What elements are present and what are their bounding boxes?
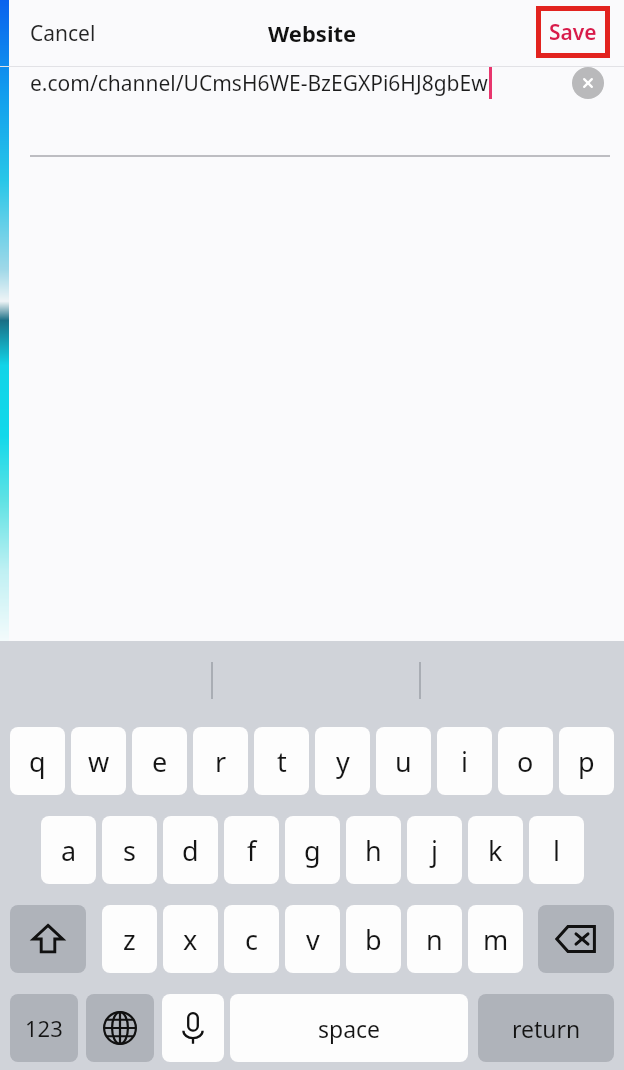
button[interactable]: r — [193, 727, 248, 795]
button[interactable]: d — [163, 816, 218, 884]
button[interactable]: g — [285, 816, 340, 884]
button[interactable]: i — [437, 727, 492, 795]
button[interactable]: e — [132, 727, 187, 795]
staticText: k — [488, 832, 503, 869]
staticText: d — [182, 832, 199, 869]
staticText: e — [152, 743, 168, 780]
button[interactable]: j — [407, 816, 462, 884]
staticText: f — [247, 832, 257, 869]
staticText: i — [461, 743, 468, 780]
staticText: w — [88, 743, 110, 780]
button[interactable]: Shift — [10, 905, 86, 973]
button[interactable]: o — [498, 727, 553, 795]
staticText: m — [483, 921, 509, 958]
staticText: Website — [268, 18, 357, 48]
button[interactable]: z — [102, 905, 157, 973]
button[interactable]: b — [346, 905, 401, 973]
button[interactable]: f — [224, 816, 279, 884]
button[interactable]: u — [376, 727, 431, 795]
staticText: b — [365, 921, 382, 958]
button[interactable]: h — [346, 816, 401, 884]
staticText: v — [306, 921, 320, 958]
staticText: space — [318, 1013, 381, 1044]
button[interactable]: x — [163, 905, 218, 973]
staticText: n — [426, 921, 443, 958]
staticText: h — [365, 832, 382, 869]
button[interactable]: w — [71, 727, 126, 795]
staticText: c — [245, 921, 258, 958]
staticText: z — [123, 921, 136, 958]
button[interactable]: t — [254, 727, 309, 795]
staticText: return — [512, 1013, 581, 1044]
staticText: Cancel — [30, 19, 96, 48]
staticText: u — [395, 743, 412, 780]
button[interactable]: a — [41, 816, 96, 884]
button[interactable]: v — [285, 905, 340, 973]
staticText: j — [431, 832, 438, 869]
staticText: x — [183, 921, 198, 958]
button[interactable]: p — [559, 727, 614, 795]
button[interactable]: Switch keyboard language — [86, 994, 154, 1062]
staticText: Save — [549, 18, 597, 47]
button[interactable]: Backspace — [538, 905, 614, 973]
button[interactable]: c — [224, 905, 279, 973]
button[interactable]: n — [407, 905, 462, 973]
button[interactable]: s — [102, 816, 157, 884]
button[interactable]: m — [468, 905, 523, 973]
button[interactable]: Save — [536, 6, 610, 58]
staticText: q — [29, 743, 46, 780]
button[interactable]: space — [230, 994, 468, 1062]
button[interactable]: Voice input — [162, 994, 224, 1062]
button[interactable]: return — [478, 994, 614, 1062]
staticText: t — [277, 743, 287, 780]
staticText: g — [304, 832, 321, 869]
staticText: o — [517, 743, 534, 780]
button[interactable]: 123 — [10, 994, 78, 1062]
staticText: p — [578, 743, 595, 780]
staticText: 123 — [25, 1013, 63, 1043]
button[interactable]: Clear text — [572, 67, 604, 99]
staticText: s — [123, 832, 136, 869]
staticText: y — [336, 743, 350, 780]
button[interactable]: l — [529, 816, 584, 884]
button[interactable]: k — [468, 816, 523, 884]
staticText: e.com/channel/UCmsH6WE-BzEGXPi6HJ8gbEw — [30, 69, 488, 98]
staticText: r — [215, 743, 227, 780]
button[interactable]: Cancel — [14, 11, 112, 56]
button[interactable]: y — [315, 727, 370, 795]
staticText: a — [61, 832, 77, 869]
button[interactable]: q — [10, 727, 65, 795]
staticText: l — [553, 832, 560, 869]
